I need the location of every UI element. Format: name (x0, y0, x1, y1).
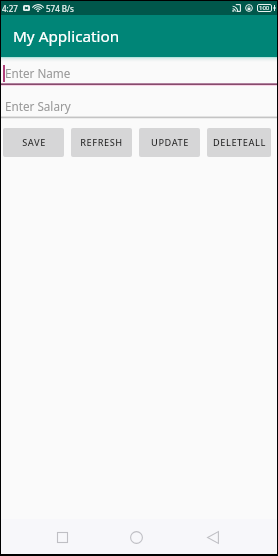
button[interactable]: Enter Name (1, 63, 277, 86)
button[interactable]: UPDATE (139, 128, 200, 157)
staticText: UPDATE (151, 136, 189, 149)
staticText: DELETEALL (213, 136, 266, 149)
button[interactable]: SAVE (3, 128, 64, 157)
staticText: SAVE (22, 136, 46, 149)
staticText: REFRESH (80, 136, 123, 149)
staticText: 100 (259, 4, 270, 12)
button[interactable]: REFRESH (71, 128, 132, 157)
button[interactable]: Recents (39, 520, 86, 555)
staticText: Enter Name (5, 65, 71, 81)
button[interactable]: Enter Salary (1, 96, 277, 119)
staticText: Enter Salary (5, 98, 71, 114)
button[interactable]: Back (189, 520, 236, 555)
staticText: My Application (13, 26, 120, 47)
button[interactable]: Home (113, 520, 160, 555)
button[interactable]: DELETEALL (207, 128, 271, 157)
staticText: 4:27 (2, 3, 18, 14)
staticText: 574 B/s (46, 3, 74, 14)
